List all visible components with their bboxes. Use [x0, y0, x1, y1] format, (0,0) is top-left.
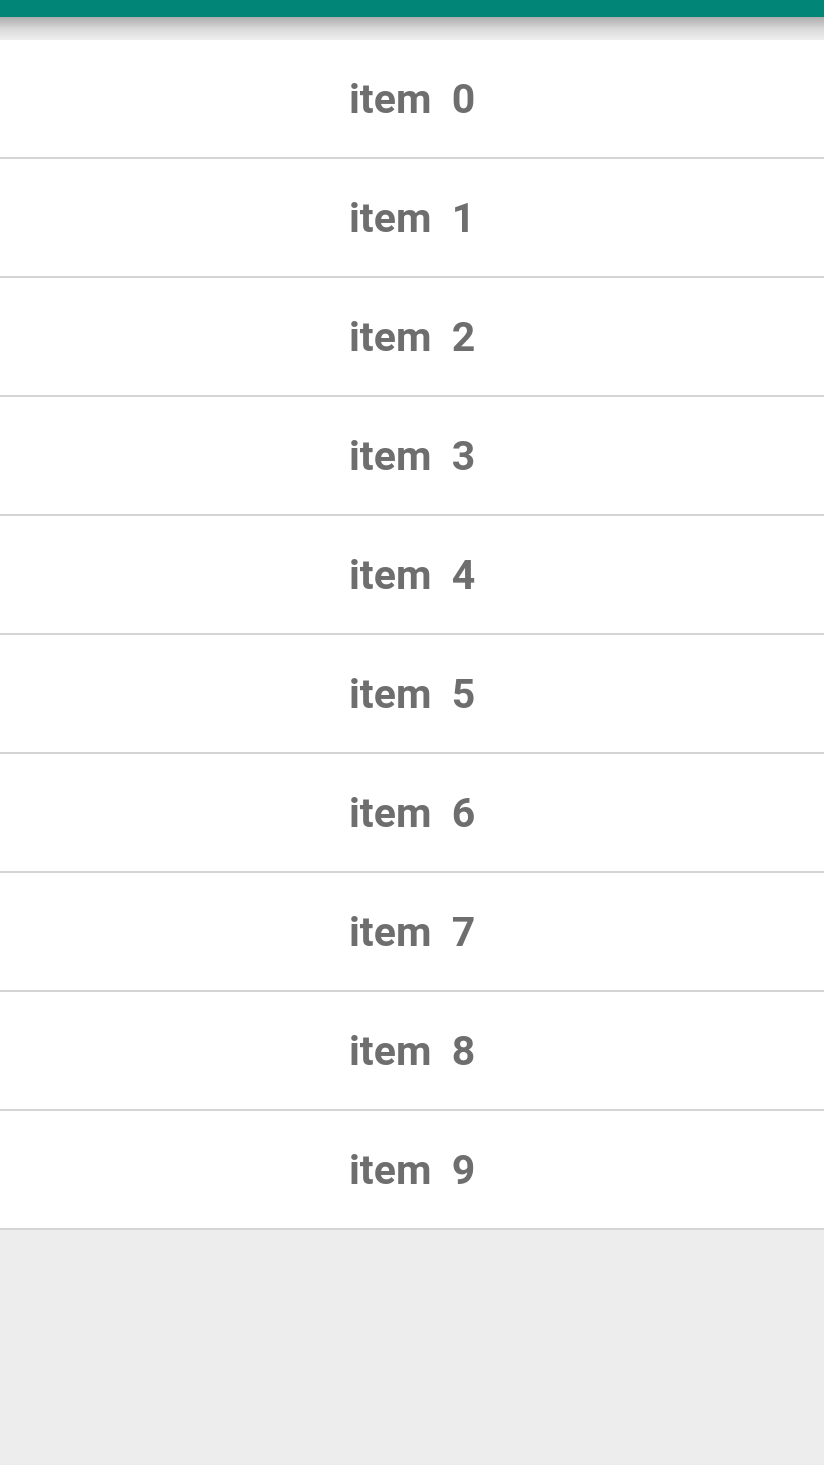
button[interactable]: item 5 [0, 635, 824, 752]
staticText: item 2 [349, 313, 476, 361]
button[interactable]: item 6 [0, 754, 824, 871]
staticText: item 1 [349, 194, 476, 242]
button[interactable]: item 7 [0, 873, 824, 990]
staticText: item 6 [349, 789, 476, 837]
staticText: item 9 [349, 1146, 476, 1194]
button[interactable]: item 9 [0, 1111, 824, 1228]
button[interactable]: item 3 [0, 397, 824, 514]
button[interactable]: item 4 [0, 516, 824, 633]
staticText: item 5 [349, 670, 476, 718]
button[interactable]: item 1 [0, 159, 824, 276]
staticText: item 4 [349, 551, 476, 599]
button[interactable]: item 2 [0, 278, 824, 395]
staticText: item 0 [349, 75, 476, 123]
staticText: item 7 [349, 908, 476, 956]
button[interactable]: item 8 [0, 992, 824, 1109]
staticText: item 8 [349, 1027, 476, 1075]
staticText: item 3 [349, 432, 476, 480]
button[interactable]: item 0 [0, 40, 824, 157]
